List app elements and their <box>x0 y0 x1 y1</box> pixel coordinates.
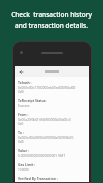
button[interactable]: Back <box>17 68 25 76</box>
button[interactable]: Value : <box>18 148 86 158</box>
staticText: From : <box>18 112 29 117</box>
staticText: Gas Limit : <box>18 162 36 167</box>
staticText: 0x00a20f0b0f 0fd0f00000b00a00c0 0a0 <box>18 118 71 126</box>
staticText: 0.00000000000000000001 HMT <box>18 154 65 158</box>
staticText: Check transaction history <box>11 10 92 19</box>
button[interactable]: Verified By Transaction : <box>18 176 86 182</box>
staticText: 100000 <box>18 168 29 172</box>
staticText: Verified By Transaction : <box>18 176 58 181</box>
staticText: TxReceipt Status: <box>18 98 47 103</box>
staticText: Value : <box>18 148 29 153</box>
button[interactable]: Gas Limit : <box>18 162 86 172</box>
button[interactable]: TxReceipt Status: <box>18 98 86 108</box>
staticText: Txhash : <box>18 80 32 85</box>
button[interactable]: To : <box>18 130 86 144</box>
staticText: and transaction details. <box>15 21 88 30</box>
button[interactable]: Txhash : <box>18 80 86 94</box>
staticText: Success <box>18 104 30 108</box>
staticText: 0x000e00b00f00c0f00f00a000f00b00 0d0 <box>18 136 74 144</box>
button[interactable]: From : <box>18 112 86 126</box>
staticText: To : <box>18 130 24 135</box>
staticText: 0x000e00b170f2000eb00ed000f0bd00 0d0 <box>18 86 76 94</box>
